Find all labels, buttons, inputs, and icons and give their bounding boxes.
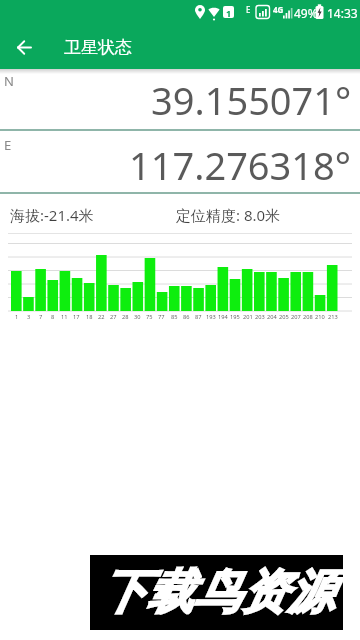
staticText: 定位精度: 8.0米 (176, 205, 281, 225)
staticText: 87 (195, 313, 202, 321)
button[interactable] (8, 31, 40, 63)
staticText: 194 (218, 313, 228, 321)
staticText: 8 (51, 313, 55, 321)
staticText: 49% (294, 5, 318, 21)
staticText: 22 (98, 313, 105, 321)
staticText: 7 (39, 313, 43, 321)
staticText: 208 (303, 313, 313, 321)
staticText: 193 (206, 313, 216, 321)
staticText: 86 (183, 313, 190, 321)
staticText: 30 (134, 313, 141, 321)
staticText: 18 (86, 313, 93, 321)
staticText: 205 (279, 313, 289, 321)
staticText: 210 (315, 313, 325, 321)
staticText: 4G (273, 4, 284, 15)
staticText: N (4, 72, 14, 90)
staticText: 117.276318° (129, 139, 352, 187)
staticText: E (4, 136, 12, 154)
staticText: 卫星状态 (64, 37, 132, 58)
staticText: 17 (73, 313, 80, 321)
staticText: 75 (146, 313, 153, 321)
staticText: 11 (61, 313, 68, 321)
staticText: 海拔:-21.4米 (10, 205, 94, 225)
button[interactable]: 下载鸟资源 (90, 555, 343, 630)
staticText: 213 (328, 313, 338, 321)
staticText: 203 (255, 313, 265, 321)
staticText: 85 (171, 313, 178, 321)
staticText: 27 (110, 313, 117, 321)
staticText: 201 (243, 313, 253, 321)
staticText: 39.155071° (151, 74, 352, 122)
staticText: 28 (122, 313, 129, 321)
staticText: 195 (230, 313, 240, 321)
staticText: 14:33 (327, 5, 358, 21)
staticText: 204 (267, 313, 277, 321)
staticText: 3 (27, 313, 31, 321)
staticText: 1 (226, 7, 232, 19)
staticText: E (246, 4, 251, 15)
staticText: 1 (15, 313, 19, 321)
staticText: 77 (158, 313, 165, 321)
staticText: 207 (291, 313, 301, 321)
staticText: 下载鸟资源 (99, 563, 334, 622)
